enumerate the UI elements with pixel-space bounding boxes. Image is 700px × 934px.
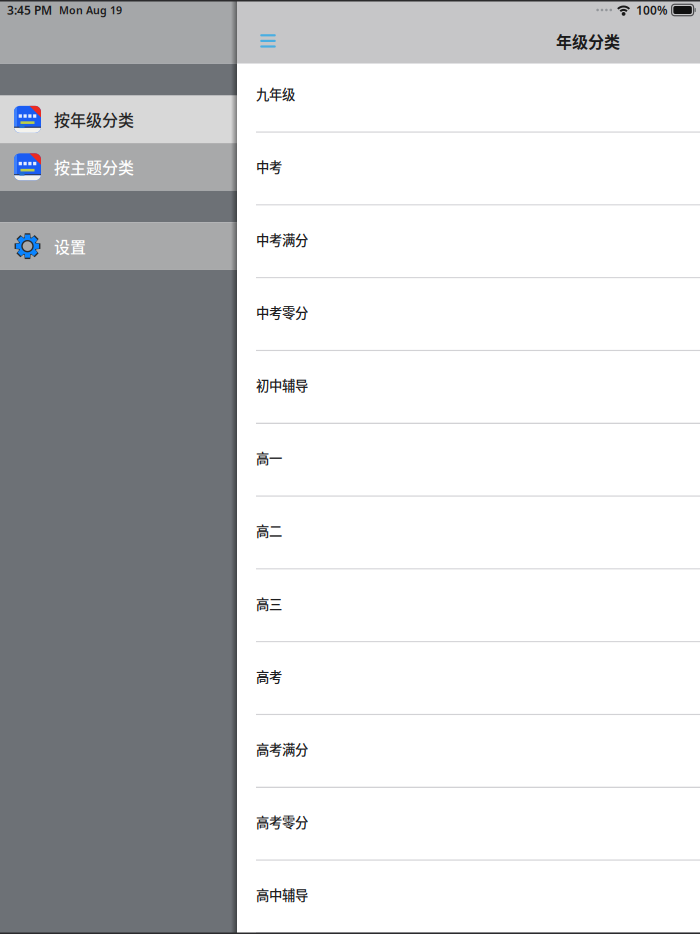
staticText: 高考满分: [256, 739, 308, 759]
button[interactable]: 中考: [237, 133, 700, 206]
staticText: 设置: [54, 235, 86, 258]
staticText: 高考零分: [256, 812, 308, 831]
button[interactable]: 初中辅导: [237, 351, 700, 424]
staticText: 高二: [256, 521, 282, 540]
staticText: 中考零分: [256, 302, 308, 322]
staticText: 年级分类: [556, 29, 620, 52]
staticText: 高一: [256, 448, 282, 467]
button[interactable]: 高二: [237, 497, 700, 570]
button[interactable]: 九年级: [237, 60, 700, 133]
staticText: 初中辅导: [256, 375, 308, 395]
staticText: 按主题分类: [54, 155, 134, 178]
staticText: 高考: [256, 666, 282, 686]
staticText: 按年级分类: [54, 108, 134, 131]
button[interactable]: 高一: [237, 424, 700, 497]
staticText: 100%: [636, 2, 668, 18]
staticText: 九年级: [256, 84, 295, 103]
button[interactable]: 高中辅导: [237, 861, 700, 934]
button[interactable]: 高三: [237, 570, 700, 642]
staticText: Mon Aug 19: [59, 3, 122, 17]
button[interactable]: 中考零分: [237, 278, 700, 351]
button[interactable]: Show sidebar: [246, 19, 290, 63]
button[interactable]: 高考零分: [237, 788, 700, 861]
staticText: 高中辅导: [256, 885, 308, 904]
staticText: 高三: [256, 594, 282, 613]
button[interactable]: 按主题分类: [0, 143, 237, 191]
staticText: 3:45 PM: [7, 2, 52, 18]
button[interactable]: 中考满分: [237, 206, 700, 278]
button[interactable]: 按年级分类: [0, 96, 237, 143]
staticText: 中考满分: [256, 230, 308, 249]
staticText: 中考: [256, 157, 282, 176]
button[interactable]: 高考满分: [237, 715, 700, 788]
button[interactable]: 设置: [0, 222, 237, 270]
button[interactable]: 高考: [237, 642, 700, 715]
